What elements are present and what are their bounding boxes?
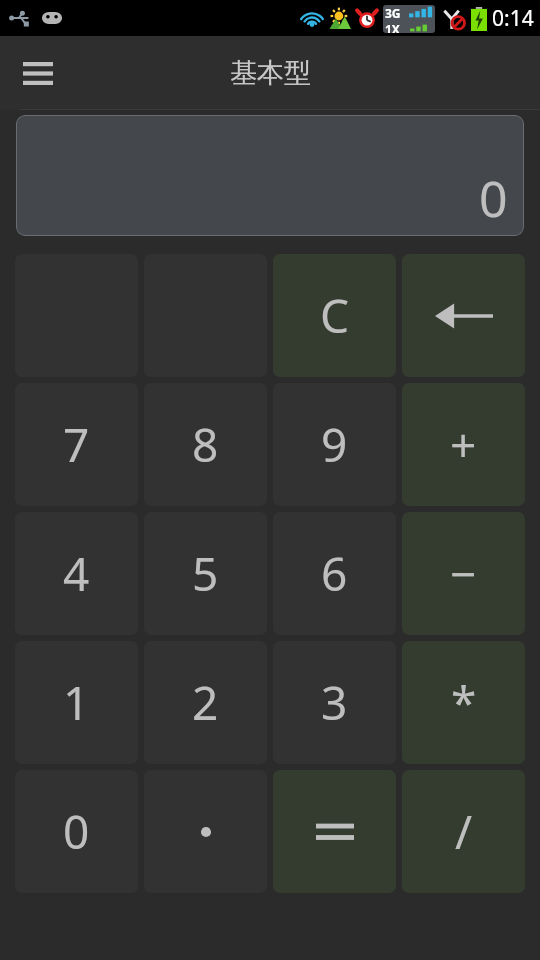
staticText: 3G <box>385 5 401 21</box>
button[interactable]: Backspace <box>402 254 525 377</box>
button[interactable]: 8 <box>144 383 267 506</box>
button[interactable]: Menu <box>14 49 62 97</box>
staticText: 0:14 <box>492 4 534 33</box>
staticText: 4 <box>63 542 90 605</box>
button[interactable]: 3 <box>273 641 396 764</box>
staticText: 3 <box>321 671 348 734</box>
button[interactable]: * <box>402 641 525 764</box>
staticText: * <box>451 671 477 734</box>
staticText: 7 <box>63 413 90 476</box>
staticText: 基本型 <box>230 56 311 90</box>
staticText: 2 <box>192 671 219 734</box>
button[interactable]: 4 <box>15 512 138 635</box>
button[interactable]: 7 <box>15 383 138 506</box>
button[interactable]: Decimal point <box>144 770 267 893</box>
button[interactable]: − <box>402 512 525 635</box>
button[interactable]: C <box>273 254 396 377</box>
staticText: 6 <box>321 542 348 605</box>
button[interactable]: 0 <box>16 115 524 236</box>
button[interactable]: 6 <box>273 512 396 635</box>
staticText: + <box>450 413 477 476</box>
staticText: C <box>320 284 350 347</box>
staticText: − <box>450 542 477 605</box>
button[interactable]: + <box>402 383 525 506</box>
button[interactable]: 0 <box>15 770 138 893</box>
button[interactable]: / <box>402 770 525 893</box>
staticText: 0 <box>63 800 90 863</box>
staticText: 9 <box>321 413 348 476</box>
staticText: 8 <box>192 413 219 476</box>
button[interactable]: 1 <box>15 641 138 764</box>
staticText: 1 <box>63 671 90 734</box>
button[interactable]: Equals <box>273 770 396 893</box>
staticText: 5 <box>192 542 219 605</box>
staticText: / <box>455 800 473 863</box>
staticText: 1X <box>385 21 400 33</box>
button[interactable]: 2 <box>144 641 267 764</box>
button[interactable]: 9 <box>273 383 396 506</box>
button[interactable]: 5 <box>144 512 267 635</box>
staticText: 0 <box>479 164 508 232</box>
